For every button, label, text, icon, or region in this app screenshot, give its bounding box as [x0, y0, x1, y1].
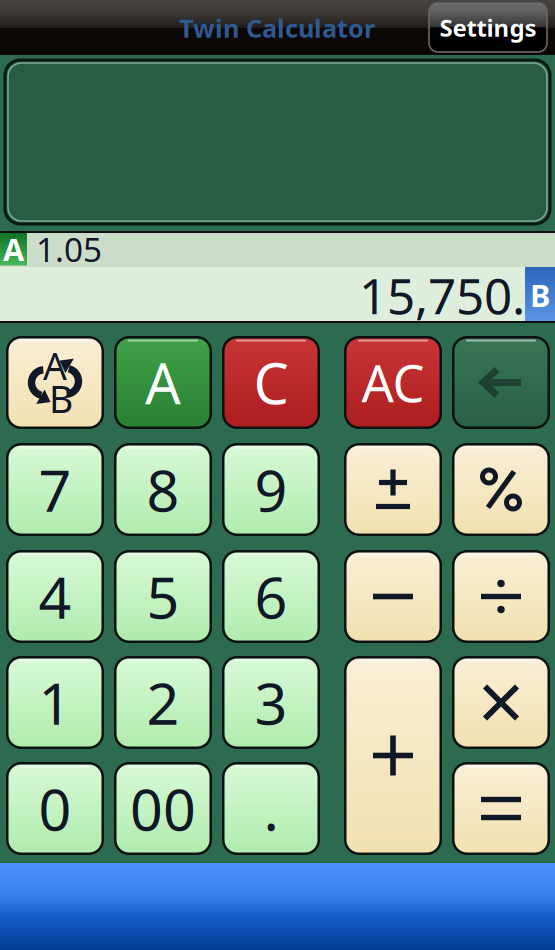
staticText: 15,750. — [359, 262, 525, 328]
button[interactable]: Minus — [344, 550, 442, 643]
button[interactable]: 9 — [222, 443, 320, 536]
button[interactable]: 6 — [222, 550, 320, 643]
staticText: 5 — [146, 558, 179, 634]
button[interactable]: 00 — [114, 762, 212, 855]
staticText: 4 — [38, 558, 71, 634]
staticText: 9 — [254, 451, 287, 527]
button[interactable]: Equals — [452, 762, 550, 855]
staticText: 8 — [146, 451, 179, 527]
button[interactable]: 7 — [6, 443, 104, 536]
button[interactable]: 5 — [114, 550, 212, 643]
button[interactable]: A — [114, 336, 212, 429]
button[interactable]: C — [222, 336, 320, 429]
button[interactable]: Backspace — [452, 336, 550, 429]
button[interactable]: Divide — [452, 550, 550, 643]
staticText: 6 — [254, 558, 287, 634]
button[interactable]: Percent — [452, 443, 550, 536]
button[interactable]: Plus — [344, 656, 442, 855]
button[interactable]: 4 — [6, 550, 104, 643]
button[interactable]: Settings — [429, 3, 547, 52]
staticText: 00 — [130, 770, 196, 846]
staticText: AC — [361, 349, 424, 416]
button[interactable]: Multiply — [452, 656, 550, 749]
staticText: B — [49, 374, 73, 423]
staticText: 0 — [38, 770, 71, 846]
staticText: 3 — [254, 664, 287, 740]
button[interactable]: 1 — [6, 656, 104, 749]
staticText: 1 — [38, 664, 71, 740]
button[interactable]: Swap A and B — [6, 336, 104, 429]
staticText: . — [263, 770, 278, 846]
button[interactable]: 0 — [6, 762, 104, 855]
staticText: A — [3, 229, 24, 269]
staticText: Settings — [439, 12, 536, 43]
staticText: A — [43, 341, 67, 390]
button[interactable]: 8 — [114, 443, 212, 536]
staticText: 1.05 — [36, 227, 102, 271]
button[interactable]: 3 — [222, 656, 320, 749]
button[interactable]: . — [222, 762, 320, 855]
button[interactable]: 2 — [114, 656, 212, 749]
button[interactable]: AC — [344, 336, 442, 429]
staticText: B — [530, 275, 550, 315]
staticText: C — [253, 345, 288, 420]
staticText: A — [145, 345, 181, 420]
staticText: 2 — [146, 664, 179, 740]
button[interactable]: Plus minus — [344, 443, 442, 536]
staticText: 7 — [38, 451, 71, 527]
staticText: Twin Calculator — [179, 11, 375, 45]
